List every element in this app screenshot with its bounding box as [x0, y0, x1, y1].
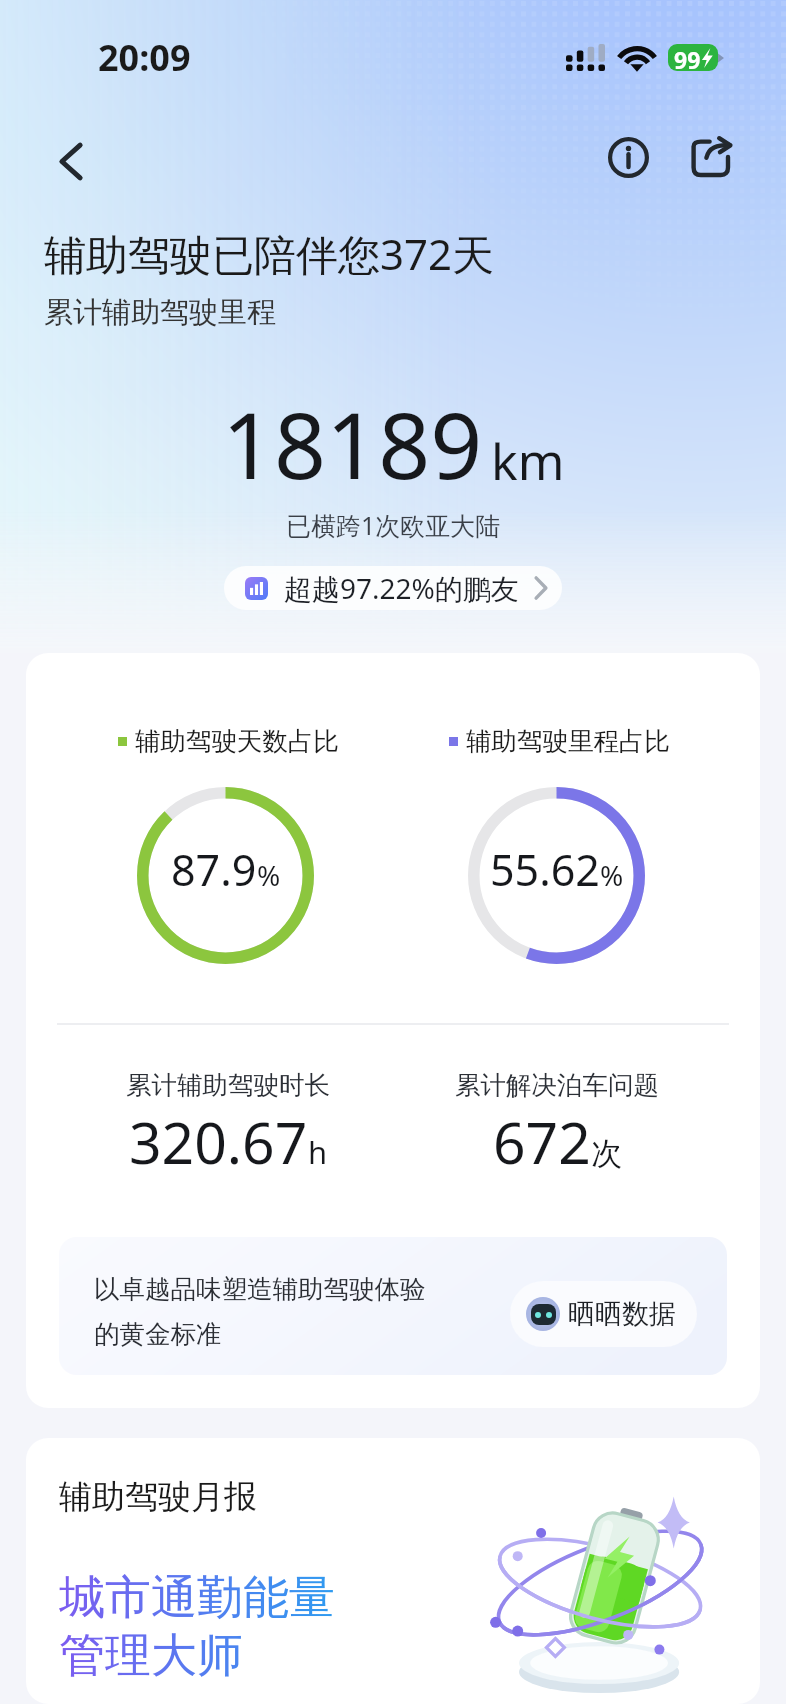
staticText: 累计解决泊车问题 [455, 1069, 659, 1101]
staticText: 以卓越品味塑造辅助驾驶体验 [94, 1273, 426, 1305]
button[interactable]: Share [683, 128, 741, 186]
staticText: 超越97.22%的鹏友 [284, 569, 519, 607]
staticText: 99 [674, 44, 701, 71]
staticText: 的黄金标准 [94, 1318, 222, 1350]
staticText: 已横跨1次欧亚大陆 [286, 508, 501, 542]
button[interactable]: 晒晒数据 [510, 1281, 697, 1347]
staticText: 55.62 [490, 840, 600, 899]
staticText: 辅助驾驶天数占比 [135, 725, 339, 757]
staticText: 320.67 [129, 1103, 308, 1173]
staticText: 管理大师 [59, 1627, 243, 1685]
staticText: 辅助驾驶月报 [59, 1476, 257, 1518]
staticText: % [600, 856, 624, 894]
staticText: km [491, 427, 565, 495]
staticText: h [308, 1131, 328, 1173]
staticText: 672 [493, 1103, 591, 1173]
button[interactable]: 辅助驾驶月报 [26, 1438, 760, 1704]
staticText: 87.9 [171, 840, 257, 899]
button[interactable]: 超越97.22%的鹏友 [224, 566, 562, 610]
staticText: 累计辅助驾驶时长 [126, 1069, 330, 1101]
staticText: 累计辅助驾驶里程 [44, 294, 276, 331]
button[interactable]: Info [599, 128, 657, 186]
staticText: 城市通勤能量 [59, 1569, 335, 1627]
button[interactable]: Back [39, 129, 103, 193]
staticText: % [257, 856, 281, 894]
staticText: 18189 [222, 382, 483, 506]
staticText: 20:09 [98, 33, 191, 82]
staticText: 次 [591, 1134, 622, 1173]
staticText: 辅助驾驶里程占比 [466, 725, 670, 757]
staticText: 辅助驾驶已陪伴您372天 [44, 225, 495, 282]
staticText: 晒晒数据 [568, 1297, 676, 1331]
